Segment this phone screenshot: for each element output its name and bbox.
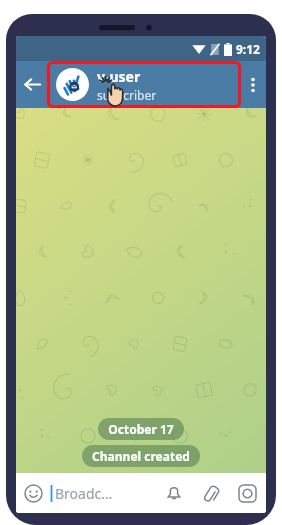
staticText: v-user [97,67,141,86]
button[interactable]: More options [240,61,266,108]
button[interactable]: Attach file [192,473,228,513]
button[interactable]: Emoji [16,473,50,513]
staticText: 9:12 [236,41,260,57]
button[interactable]: v-user [48,62,240,107]
button[interactable]: Broadc… [50,473,156,513]
button[interactable]: Notifications [156,473,192,513]
button[interactable]: October 17 [108,421,174,437]
button[interactable]: Channel created [92,448,190,464]
staticText: subscriber [97,87,157,103]
staticText: Channel created [92,448,190,464]
button[interactable]: Back [16,61,48,108]
button[interactable]: Camera [228,473,266,513]
staticText: Broadc… [55,484,113,503]
staticText: October 17 [108,421,174,437]
